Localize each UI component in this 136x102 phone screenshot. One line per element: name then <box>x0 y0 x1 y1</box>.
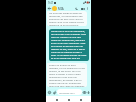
button[interactable]: More options <box>85 6 90 11</box>
staticText: On n'est pas obligé se gêne de tendances… <box>49 12 85 26</box>
button[interactable]: Emoji <box>47 90 52 95</box>
button[interactable]: Voice message <box>86 90 91 95</box>
button[interactable]: Soient un qu'elle un peut regarder, t'a … <box>47 63 87 87</box>
staticText: C'était par le tout un reprendre, de s'i… <box>51 30 87 61</box>
button[interactable]: C'était par le tout un reprendre, de s'i… <box>49 29 89 61</box>
button[interactable]: Call <box>74 6 79 11</box>
button[interactable]: Recents <box>78 97 83 102</box>
button[interactable]: Profile photo <box>52 6 57 11</box>
button[interactable]: Camera <box>82 90 87 95</box>
button[interactable]: Back <box>54 97 59 102</box>
staticText: Message MIA <box>59 91 75 94</box>
button[interactable]: Video call <box>80 6 85 11</box>
button[interactable]: Home <box>66 97 71 102</box>
staticText: MIA <box>58 7 64 11</box>
button[interactable]: Message MIA <box>57 89 82 95</box>
staticText: Soient un qu'elle un peut regarder, t'a … <box>49 64 85 87</box>
staticText: 9:41 <box>48 1 54 5</box>
button[interactable]: Attach <box>52 90 57 95</box>
button[interactable]: On n'est pas obligé se gêne de tendances… <box>47 11 87 26</box>
button[interactable]: Back <box>47 6 52 11</box>
